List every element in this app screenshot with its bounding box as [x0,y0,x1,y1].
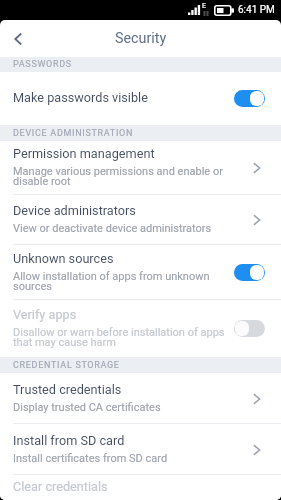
staticText: Unknown sources [13,253,114,266]
staticText: PASSWORDS [13,59,72,70]
button[interactable]: Clear credentials [0,475,281,500]
staticText: CREDENTIAL STORAGE [13,360,120,371]
staticText: Permission management [13,148,155,161]
staticText: View or deactivate device administrators [13,222,212,235]
button[interactable]: Permission management [0,141,281,195]
button[interactable]: On [234,264,265,281]
button[interactable]: Unknown sources [0,245,281,300]
button[interactable]: Trusted credentials [0,373,281,424]
button[interactable]: Make passwords visible [0,72,281,125]
staticText: Trusted credentials [13,384,122,397]
staticText: Disallow or warn before installation of … [13,326,235,349]
button[interactable]: Off [234,320,265,337]
staticText: Device administrators [13,205,136,218]
staticText: Display trusted CA certificates [13,401,161,414]
staticText: 6:41 PM [238,4,275,16]
button[interactable]: On [234,90,265,107]
staticText: Install certificates from SD card [13,452,168,465]
staticText: E [202,2,206,10]
button[interactable]: Verify apps [0,300,281,357]
staticText: Make passwords visible [13,92,148,105]
staticText: Install from SD card [13,435,125,448]
staticText: Allow installation of apps from unknown … [13,270,235,293]
staticText: Verify apps [13,309,77,322]
staticText: Security [115,30,167,47]
button[interactable]: Back [5,26,31,52]
staticText: DEVICE ADMINISTRATION [13,128,134,139]
button[interactable]: Install from SD card [0,424,281,475]
staticText: Manage various permissions and enable or… [13,165,235,188]
button[interactable]: Device administrators [0,195,281,245]
staticText: Clear credentials [13,481,108,494]
